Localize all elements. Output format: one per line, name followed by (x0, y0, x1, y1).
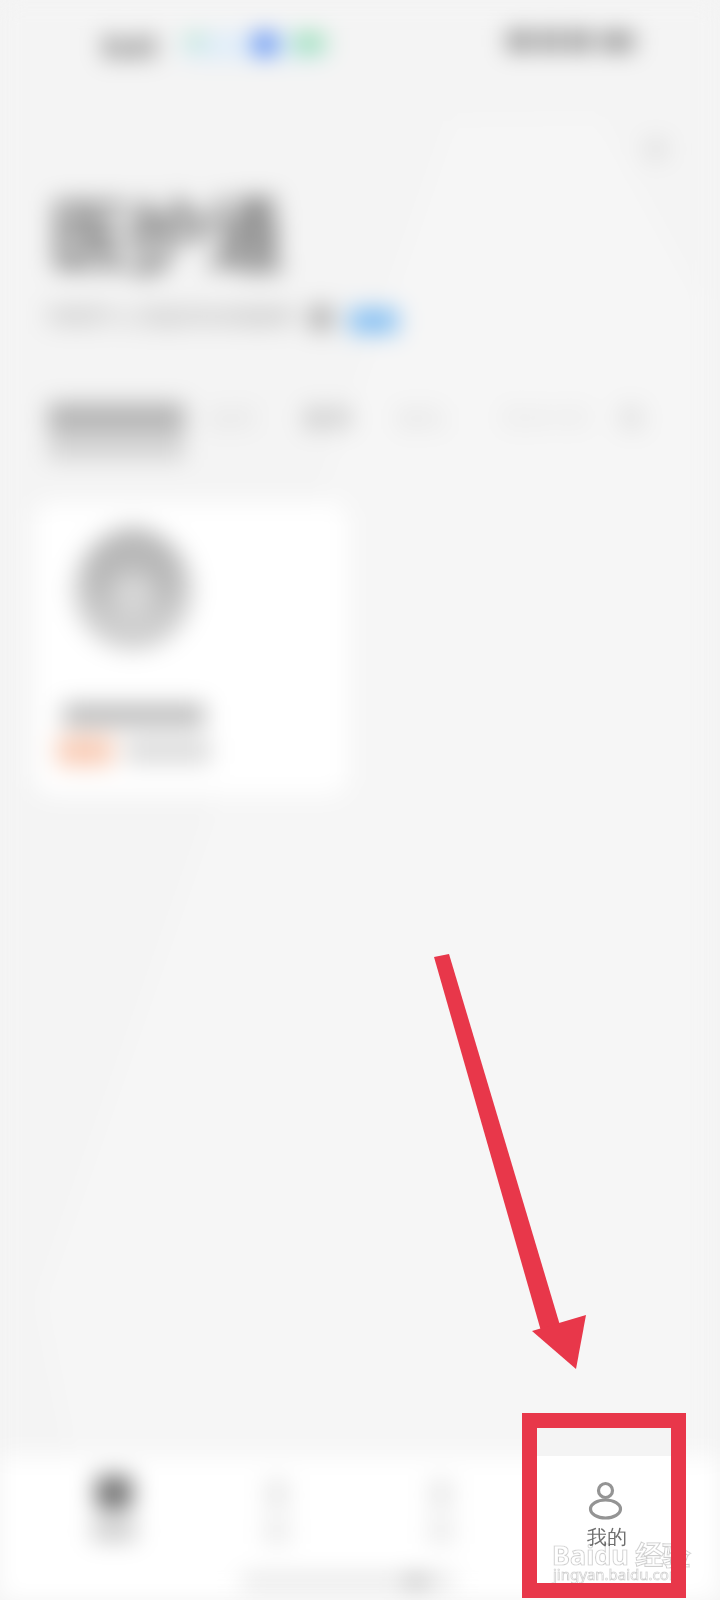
staticText: 9:41 (103, 28, 159, 66)
staticText: 为医护人员提供在线服务 (44, 302, 297, 331)
staticText: 服务 (303, 402, 355, 435)
button[interactable]: 我的 (537, 1427, 672, 1587)
staticText: Baidu 经验 (552, 1536, 690, 1573)
staticText: jingyan.baidu.com (553, 1564, 683, 1584)
staticText: 医护通 (50, 190, 284, 288)
staticText: 我的 (587, 1525, 627, 1550)
